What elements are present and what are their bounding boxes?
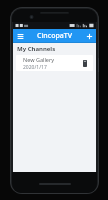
button[interactable]: Add channel xyxy=(82,29,96,43)
button[interactable]: Open navigation menu xyxy=(13,29,27,43)
button[interactable]: New Gallery xyxy=(16,55,93,71)
staticText: New Gallery xyxy=(23,56,55,63)
staticText: CincopaTV xyxy=(13,31,96,41)
staticText: My Channels xyxy=(17,45,56,53)
button[interactable]: More options xyxy=(81,57,89,69)
staticText: 2020/1/17 xyxy=(23,64,47,71)
